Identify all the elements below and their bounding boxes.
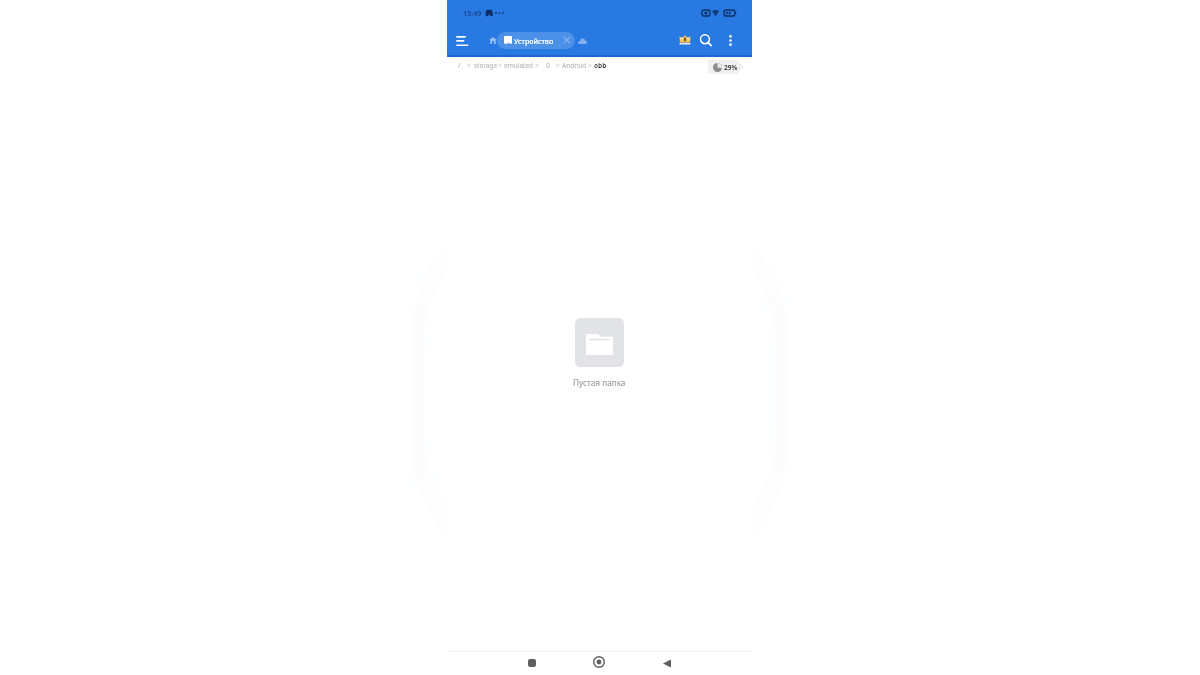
button[interactable]: Back [657, 653, 677, 673]
staticText: > [498, 61, 502, 70]
button[interactable]: Home [589, 652, 609, 672]
button[interactable]: Устройство [497, 32, 575, 49]
staticText: > [535, 61, 539, 70]
button[interactable]: Empty folder [575, 318, 624, 367]
button[interactable]: emulated [504, 61, 534, 70]
button[interactable]: Home folder [485, 33, 500, 48]
staticText: > [588, 61, 592, 70]
button[interactable]: 0 [546, 61, 550, 70]
button[interactable]: Android [562, 61, 587, 70]
staticText: Устройство [514, 36, 554, 46]
button[interactable]: More options [722, 30, 738, 50]
button[interactable]: Search [697, 30, 717, 50]
button[interactable]: Cloud storage [576, 34, 589, 47]
button[interactable]: Open navigation drawer [451, 31, 473, 50]
staticText: > [467, 61, 471, 70]
staticText: Пустая папка [573, 377, 626, 388]
button[interactable]: / [458, 61, 461, 70]
staticText: 29% [724, 63, 738, 72]
button[interactable]: storage [474, 61, 498, 70]
button[interactable]: obb [594, 61, 607, 70]
button[interactable]: Recent apps [522, 653, 542, 673]
staticText: 13:49 [463, 8, 482, 18]
staticText: > [556, 61, 560, 70]
button[interactable]: Premium [674, 30, 695, 50]
button[interactable]: 29% [708, 60, 744, 74]
